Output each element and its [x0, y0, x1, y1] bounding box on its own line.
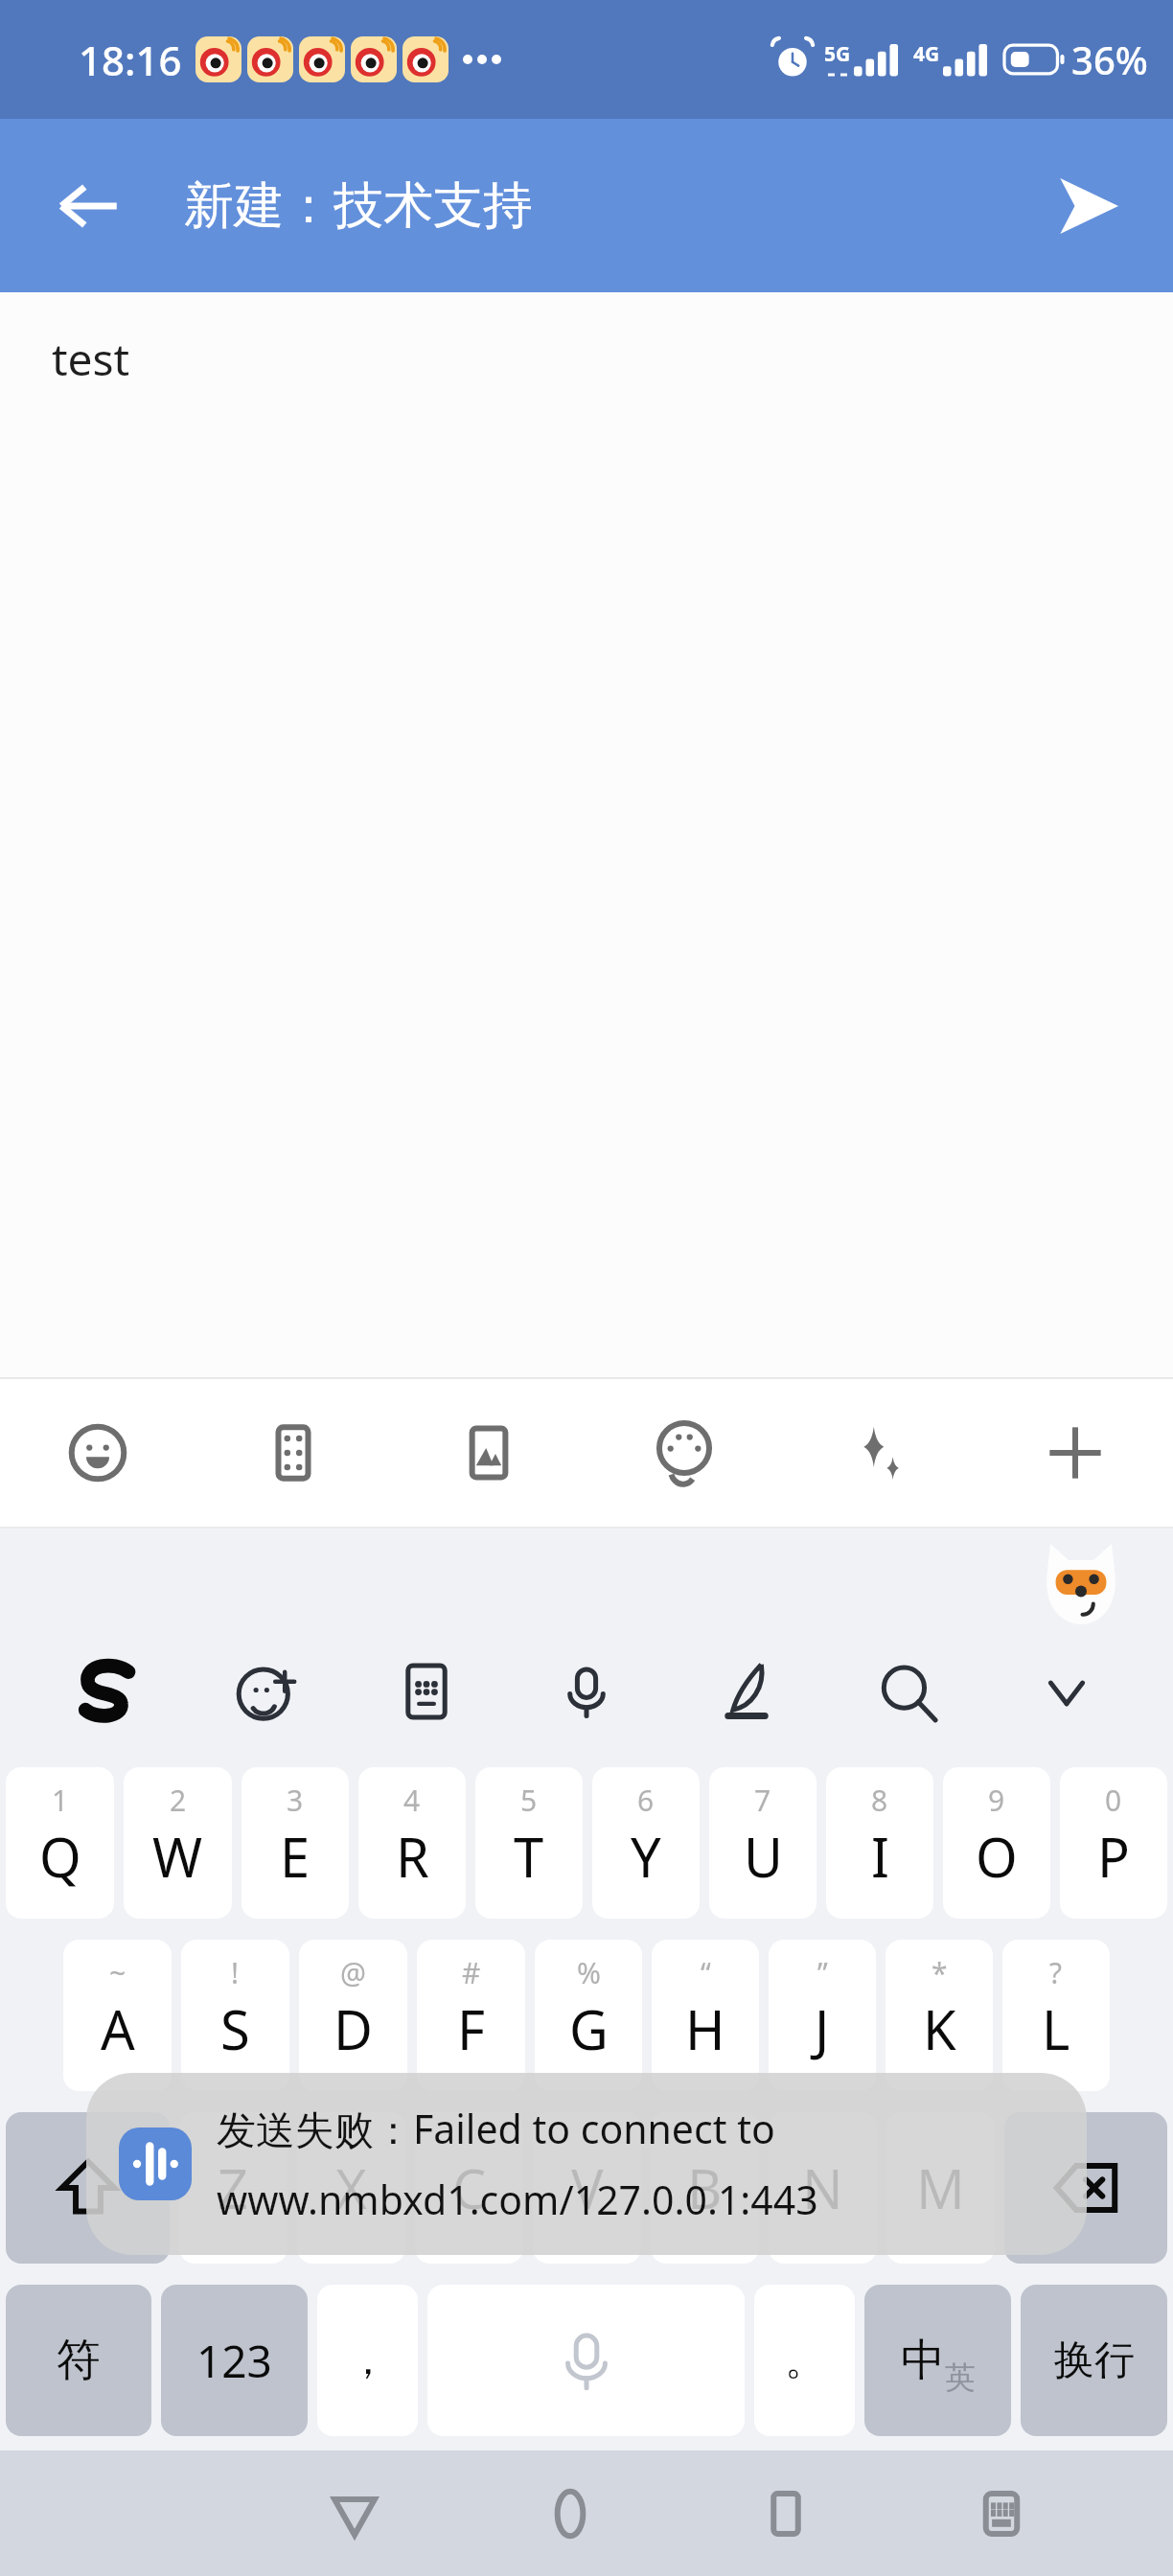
button[interactable]: N: [769, 2112, 877, 2264]
button[interactable]: ~: [63, 1940, 172, 2091]
staticText: M: [916, 2151, 965, 2224]
button[interactable]: Search: [826, 1620, 986, 1763]
staticText: R: [396, 1820, 429, 1893]
staticText: “: [701, 1953, 711, 1992]
staticText: ，: [348, 2335, 388, 2386]
button[interactable]: Back: [246, 2450, 462, 2576]
button[interactable]: B: [651, 2112, 759, 2264]
button[interactable]: 123: [161, 2285, 308, 2436]
button[interactable]: “: [652, 1940, 759, 2091]
button[interactable]: Keyboard layout: [346, 1620, 506, 1763]
staticText: 。: [785, 2335, 825, 2386]
staticText: test: [52, 329, 130, 389]
button[interactable]: *: [885, 1940, 993, 2091]
button[interactable]: Back: [42, 160, 134, 252]
button[interactable]: Dice: [195, 1379, 391, 1527]
button[interactable]: Recents: [678, 2450, 893, 2576]
staticText: U: [744, 1820, 783, 1893]
button[interactable]: 2: [124, 1767, 232, 1919]
button[interactable]: %: [535, 1940, 642, 2091]
button[interactable]: !: [181, 1940, 289, 2091]
button[interactable]: 0: [1060, 1767, 1167, 1919]
staticText: !: [231, 1953, 240, 1992]
button[interactable]: Emoji: [186, 1620, 346, 1763]
staticText: www.nmbxd1.com/127.0.0.1:443: [217, 2173, 818, 2226]
button[interactable]: 8: [826, 1767, 933, 1919]
button[interactable]: 3: [241, 1767, 349, 1919]
button[interactable]: 1: [6, 1767, 114, 1919]
button[interactable]: Palette: [586, 1379, 782, 1527]
staticText: %: [577, 1953, 601, 1992]
staticText: 新建：技术支持: [184, 174, 533, 238]
button[interactable]: 6: [592, 1767, 700, 1919]
staticText: @: [340, 1953, 366, 1992]
staticText: F: [457, 1992, 486, 2065]
staticText: 4G: [913, 40, 940, 68]
button[interactable]: Keyboard: [893, 2450, 1109, 2576]
button[interactable]: #: [417, 1940, 525, 2091]
button[interactable]: ?: [1002, 1940, 1110, 2091]
staticText: 7: [754, 1781, 771, 1820]
staticText: I: [871, 1820, 889, 1893]
staticText: N: [802, 2151, 843, 2224]
staticText: *: [931, 1953, 948, 1992]
button[interactable]: 7: [709, 1767, 816, 1919]
button[interactable]: 。: [754, 2285, 855, 2436]
staticText: 36%: [1071, 34, 1148, 85]
button[interactable]: @: [299, 1940, 407, 2091]
staticText: B: [687, 2151, 723, 2224]
button[interactable]: Emoji: [0, 1379, 195, 1527]
button[interactable]: Image: [391, 1379, 586, 1527]
button[interactable]: Home: [462, 2450, 678, 2576]
staticText: J: [815, 1992, 830, 2065]
button[interactable]: Backspace: [1004, 2112, 1167, 2264]
button[interactable]: Assistant: [1043, 1542, 1119, 1624]
button[interactable]: Voice: [427, 2285, 745, 2436]
staticText: A: [101, 1992, 135, 2065]
staticText: 符: [57, 2333, 101, 2388]
button[interactable]: Handwriting: [666, 1620, 826, 1763]
staticText: Z: [218, 2151, 249, 2224]
staticText: H: [685, 1992, 725, 2065]
staticText: S: [220, 1992, 250, 2065]
button[interactable]: 5: [475, 1767, 583, 1919]
button[interactable]: 4: [358, 1767, 466, 1919]
button[interactable]: 9: [943, 1767, 1050, 1919]
button[interactable]: 换行: [1021, 2285, 1167, 2436]
button[interactable]: Shift: [6, 2112, 170, 2264]
staticText: C: [452, 2151, 487, 2224]
button[interactable]: Hide keyboard: [986, 1620, 1146, 1763]
button[interactable]: More: [977, 1379, 1173, 1527]
button[interactable]: M: [886, 2112, 995, 2264]
staticText: E: [280, 1820, 310, 1893]
button[interactable]: V: [533, 2112, 641, 2264]
button[interactable]: C: [415, 2112, 523, 2264]
button[interactable]: Sogou: [27, 1620, 186, 1763]
button[interactable]: Language toggle: [864, 2285, 1011, 2436]
staticText: #: [462, 1953, 481, 1992]
button[interactable]: ，: [317, 2285, 418, 2436]
staticText: 5: [520, 1781, 538, 1820]
button[interactable]: Z: [179, 2112, 287, 2264]
staticText: ”: [817, 1953, 828, 1992]
button[interactable]: Send: [1041, 158, 1137, 254]
staticText: 8: [871, 1781, 888, 1820]
staticText: 3: [287, 1781, 304, 1820]
staticText: 2: [170, 1781, 187, 1820]
staticText: ~: [109, 1953, 126, 1992]
staticText: W: [152, 1820, 203, 1893]
button[interactable]: X: [297, 2112, 405, 2264]
button[interactable]: ”: [769, 1940, 876, 2091]
staticText: 英: [945, 2358, 976, 2397]
button[interactable]: Effects: [782, 1379, 977, 1527]
staticText: 4: [403, 1781, 421, 1820]
staticText: ?: [1049, 1953, 1063, 1992]
staticText: 换行: [1054, 2335, 1135, 2386]
button[interactable]: 符: [6, 2285, 151, 2436]
staticText: 6: [637, 1781, 655, 1820]
staticText: X: [335, 2151, 367, 2224]
staticText: O: [976, 1820, 1018, 1893]
staticText: 发送失败：Failed to connect to: [217, 2102, 775, 2155]
button[interactable]: Voice input: [506, 1620, 666, 1763]
staticText: 中: [901, 2333, 945, 2388]
